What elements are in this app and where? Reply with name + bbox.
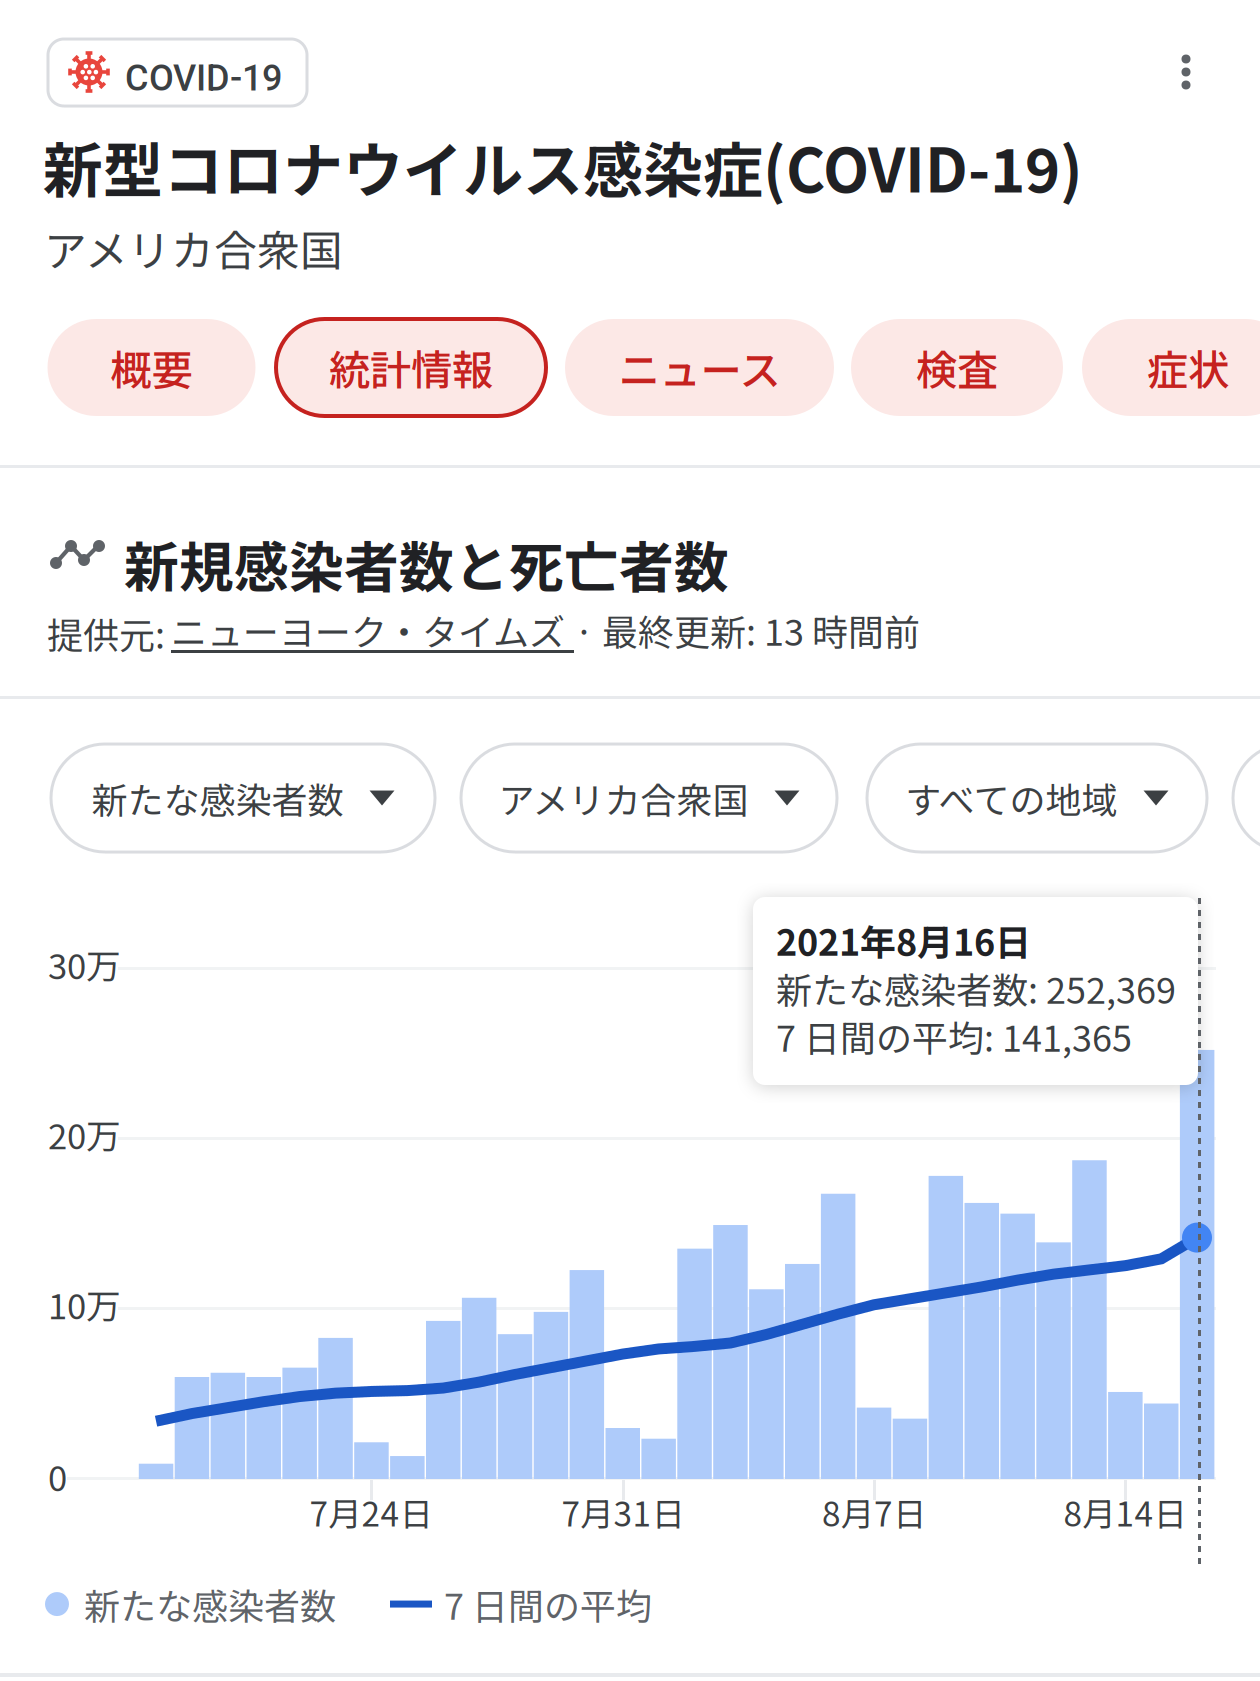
staticText: 新型コロナウイルス感染症(COVID-19): [43, 123, 1083, 210]
staticText: 概要: [110, 338, 192, 397]
button[interactable]: ニューヨーク・タイムズ: [171, 607, 581, 657]
staticText: 7 日間の平均: 141,365: [776, 1010, 1132, 1062]
staticText: すべての地域: [905, 772, 1117, 824]
staticText: 7 日間の平均: [444, 1578, 652, 1630]
button[interactable]: 症状: [1082, 319, 1260, 416]
staticText: アメリカ合衆国: [44, 217, 343, 279]
staticText: 0: [48, 1451, 67, 1501]
staticText: 20万: [48, 1109, 121, 1159]
button[interactable]: 検査: [851, 319, 1063, 416]
button[interactable]: ニュース: [565, 319, 834, 416]
button[interactable]: [1233, 744, 1260, 852]
staticText: 7月24日: [309, 1488, 432, 1536]
staticText: 8月14日: [1063, 1488, 1186, 1536]
staticText: 検査: [916, 338, 998, 397]
staticText: 10万: [48, 1279, 121, 1329]
staticText: ニュース: [618, 338, 780, 397]
button[interactable]: すべての地域: [867, 744, 1207, 852]
staticText: COVID-19: [125, 57, 282, 99]
staticText: 症状: [1147, 338, 1229, 397]
staticText: 提供元:: [47, 607, 165, 659]
button[interactable]: 新たな感染者数: [51, 744, 435, 852]
staticText: 新たな感染者数: [91, 772, 343, 824]
staticText: 2021年8月16日: [776, 914, 1031, 966]
staticText: · 最終更新: 13 時間前: [574, 604, 920, 656]
staticText: 新規感染者数と死亡者数: [124, 524, 729, 603]
staticText: アメリカ合衆国: [498, 772, 748, 824]
staticText: 統計情報: [329, 338, 493, 397]
staticText: 7月31日: [561, 1488, 684, 1536]
button[interactable]: アメリカ合衆国: [461, 744, 837, 852]
button[interactable]: その他のオプション: [1158, 40, 1214, 104]
staticText: 30万: [48, 939, 121, 989]
staticText: 新たな感染者数: [84, 1578, 336, 1630]
button[interactable]: COVID-19: [48, 39, 307, 106]
staticText: 新たな感染者数: 252,369: [776, 962, 1176, 1014]
button[interactable]: 概要: [47, 319, 255, 416]
staticText: ニューヨーク・タイムズ: [171, 604, 565, 656]
staticText: 8月7日: [822, 1488, 926, 1536]
button[interactable]: 統計情報: [276, 319, 546, 416]
